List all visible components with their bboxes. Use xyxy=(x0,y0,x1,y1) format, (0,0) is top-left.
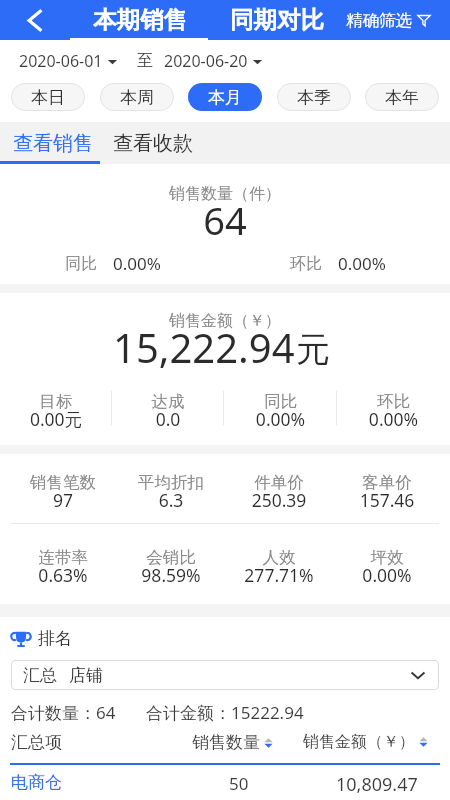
staticText: 销售金额（￥） xyxy=(303,732,415,752)
staticText: 销售数量 xyxy=(192,732,260,753)
staticText: 电商仓 xyxy=(11,772,62,793)
staticText: 同比 xyxy=(65,254,97,274)
staticText: 平均折扣 xyxy=(117,472,225,493)
staticText: 0.00% xyxy=(333,563,441,587)
staticText: 本年 xyxy=(385,87,419,108)
staticText: 目标 xyxy=(0,391,112,412)
button[interactable]: 排名 xyxy=(10,628,72,649)
staticText: 277.71% xyxy=(225,563,333,587)
staticText: 查看销售 xyxy=(13,131,93,156)
staticText: 达成 xyxy=(112,391,224,412)
button[interactable]: 本季 xyxy=(277,83,351,111)
button[interactable]: 本日 xyxy=(11,83,85,111)
staticText: 0.00% xyxy=(113,252,161,275)
staticText: 64 xyxy=(0,194,450,246)
staticText: 0.00% xyxy=(338,252,386,275)
staticText: 查看收款 xyxy=(113,131,193,156)
button[interactable]: 同期对比 xyxy=(230,0,324,40)
staticText: 0.63% xyxy=(9,563,117,587)
staticText: 98.59% xyxy=(117,563,225,587)
staticText: 2020-06-01 xyxy=(19,50,103,72)
staticText: 销售数量（件） xyxy=(0,184,450,204)
staticText: 0.00% xyxy=(224,407,337,431)
staticText: 人效 xyxy=(225,547,333,568)
staticText: 汇总项 xyxy=(11,732,62,753)
staticText: 250.39 xyxy=(225,488,333,512)
staticText: 精确筛选 xyxy=(346,10,412,31)
staticText: 同期对比 xyxy=(230,5,324,35)
staticText: 0.00% xyxy=(337,407,450,431)
staticText: 本日 xyxy=(31,87,65,108)
staticText: 元 xyxy=(296,328,330,371)
staticText: 会销比 xyxy=(117,547,225,568)
button[interactable]: 查看销售 xyxy=(3,122,103,164)
staticText: 环比 xyxy=(290,254,322,274)
staticText: 至 xyxy=(137,51,153,71)
staticText: 排名 xyxy=(38,628,72,649)
staticText: 本月 xyxy=(208,87,242,108)
button[interactable]: 2020-06-01 xyxy=(19,50,118,72)
button[interactable]: Back xyxy=(0,0,69,40)
staticText: 件单价 xyxy=(225,472,333,493)
staticText: 157.46 xyxy=(333,488,441,512)
button[interactable]: 本年 xyxy=(365,83,439,111)
staticText: 店铺 xyxy=(69,665,103,686)
staticText: 本期销售 xyxy=(93,5,187,35)
button[interactable]: 本期销售 xyxy=(93,0,187,40)
button[interactable]: 查看收款 xyxy=(103,122,203,164)
button[interactable]: 本月 xyxy=(188,83,262,111)
staticText: 合计数量：64 xyxy=(11,701,116,724)
staticText: 0.0 xyxy=(112,407,224,431)
staticText: 本周 xyxy=(120,87,154,108)
staticText: 97 xyxy=(9,488,117,512)
staticText: 2020-06-20 xyxy=(164,50,248,72)
button[interactable]: 汇总 xyxy=(11,660,439,690)
staticText: 6.3 xyxy=(117,488,225,512)
button[interactable]: 2020-06-20 xyxy=(164,50,263,72)
staticText: 坪效 xyxy=(333,547,441,568)
staticText: 合计金额：15222.94 xyxy=(146,701,304,724)
staticText: 销售金额（￥） xyxy=(0,311,450,331)
staticText: 0.00元 xyxy=(0,407,112,431)
staticText: 连带率 xyxy=(9,547,117,568)
staticText: 15,222.94 xyxy=(113,320,295,374)
staticText: 客单价 xyxy=(333,472,441,493)
staticText: 本季 xyxy=(297,87,331,108)
button[interactable]: 本周 xyxy=(100,83,174,111)
staticText: 50 xyxy=(229,772,249,795)
staticText: 环比 xyxy=(337,391,450,412)
staticText: 同比 xyxy=(224,391,337,412)
button[interactable]: 精确筛选 xyxy=(346,0,431,40)
staticText: 销售笔数 xyxy=(9,472,117,493)
staticText: 10,809.47 xyxy=(336,772,418,797)
button[interactable]: 电商仓 xyxy=(0,772,450,800)
staticText: 汇总 xyxy=(23,665,57,686)
